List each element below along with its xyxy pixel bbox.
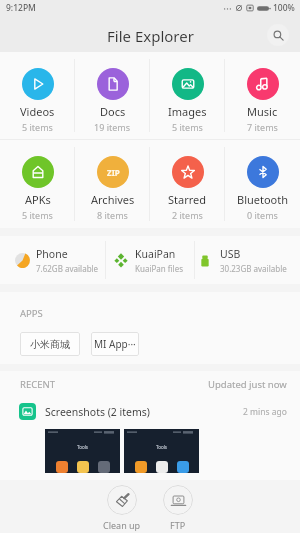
staticText: ZIP [107, 167, 120, 178]
button[interactable]: Videos [0, 52, 75, 139]
button[interactable]: Clean up [94, 485, 150, 531]
staticText: 8 items [97, 209, 128, 221]
button[interactable]: Search [267, 24, 289, 46]
staticText: Updated just now [208, 378, 287, 391]
staticText: 19 items [94, 121, 131, 133]
button[interactable]: USB [195, 236, 300, 284]
button[interactable]: FTP [150, 485, 206, 531]
staticText: RECENT [20, 378, 55, 391]
staticText: Bluetooth [237, 192, 289, 207]
staticText: 9:12PM [6, 2, 36, 14]
staticText: APPS [20, 307, 43, 320]
button[interactable]: Images [150, 52, 225, 139]
button[interactable]: KuaiPan [106, 236, 194, 284]
staticText: 30.23GB available [220, 263, 287, 274]
button[interactable]: Tools [45, 429, 120, 473]
button[interactable]: Starred [150, 140, 225, 228]
staticText: USB [220, 247, 241, 261]
staticText: KuaiPan [135, 247, 176, 261]
staticText: Clean up [103, 519, 141, 531]
staticText: KuaiPan files [135, 263, 184, 274]
staticText: 7 items [247, 121, 278, 133]
staticText: APKs [25, 192, 51, 207]
staticText: Music [247, 104, 278, 119]
staticText: 小米商城 [30, 338, 70, 351]
button[interactable]: Bluetooth [225, 140, 300, 228]
staticText: 7.62GB available [36, 263, 99, 274]
staticText: Videos [20, 104, 55, 119]
staticText: 2 items [172, 209, 203, 221]
staticText: Phone [36, 247, 68, 261]
button[interactable]: APKs [0, 140, 75, 228]
staticText: FTP [170, 519, 186, 531]
button[interactable]: Music [225, 52, 300, 139]
staticText: 2 mins ago [243, 406, 287, 418]
button[interactable]: MI App··· [91, 332, 139, 356]
staticText: 5 items [172, 121, 203, 133]
button[interactable]: Phone [0, 236, 105, 284]
staticText: Starred [168, 192, 207, 207]
staticText: 0 items [247, 209, 278, 221]
staticText: Archives [91, 192, 135, 207]
staticText: MI App··· [94, 337, 136, 351]
button[interactable]: Tools [124, 429, 199, 473]
staticText: 100% [273, 2, 295, 14]
staticText: Screenshots (2 items) [45, 405, 150, 419]
button[interactable]: ZIP [75, 140, 150, 228]
staticText: Images [168, 104, 207, 119]
staticText: Tools [77, 444, 88, 450]
button[interactable]: 小米商城 [20, 332, 80, 356]
staticText: Tools [156, 444, 167, 450]
staticText: File Explorer [107, 26, 194, 46]
button[interactable]: Docs [75, 52, 150, 139]
staticText: 5 items [22, 121, 53, 133]
button[interactable]: Screenshots (2 items) [0, 403, 300, 420]
staticText: 5 items [22, 209, 53, 221]
staticText: Docs [100, 104, 126, 119]
